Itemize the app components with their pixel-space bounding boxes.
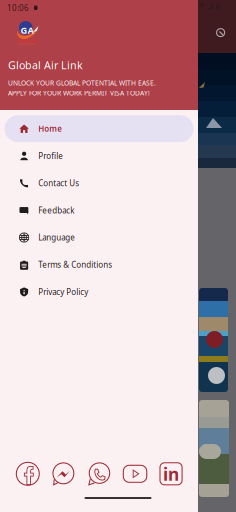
staticText: UNLOCK YOUR GLOBAL POTENTIAL WITH EASE. bbox=[8, 78, 156, 87]
button[interactable]: YouTube bbox=[123, 462, 147, 485]
button[interactable]: Profile bbox=[4, 142, 193, 169]
button[interactable]: WhatsApp bbox=[87, 462, 110, 485]
staticText: Profile bbox=[38, 151, 63, 161]
staticText: Language bbox=[38, 232, 75, 243]
staticText: Privacy Policy bbox=[38, 287, 88, 297]
staticText: 10:06 bbox=[7, 2, 29, 13]
button[interactable]: Messenger bbox=[52, 462, 75, 485]
staticText: GA bbox=[20, 24, 33, 36]
button[interactable]: Language bbox=[4, 224, 193, 251]
button[interactable]: Feedback bbox=[4, 197, 193, 224]
button[interactable]: LinkedIn bbox=[160, 462, 182, 485]
button[interactable]: Contact Us bbox=[4, 170, 193, 197]
staticText: Home bbox=[38, 123, 62, 134]
button[interactable]: Privacy Policy bbox=[4, 278, 193, 305]
staticText: in bbox=[163, 463, 179, 486]
button[interactable]: Terms & Conditions bbox=[4, 251, 193, 278]
button[interactable]: Home bbox=[4, 115, 193, 142]
button[interactable]: Facebook bbox=[16, 462, 39, 485]
staticText: Feedback bbox=[38, 205, 74, 216]
staticText: APPLY FOR YOUR WORK PERMIT VISA TODAY! bbox=[8, 88, 150, 97]
staticText: Terms & Conditions bbox=[38, 259, 112, 270]
staticText: Contact Us bbox=[38, 178, 79, 188]
staticText: Global Air Link bbox=[8, 58, 83, 72]
